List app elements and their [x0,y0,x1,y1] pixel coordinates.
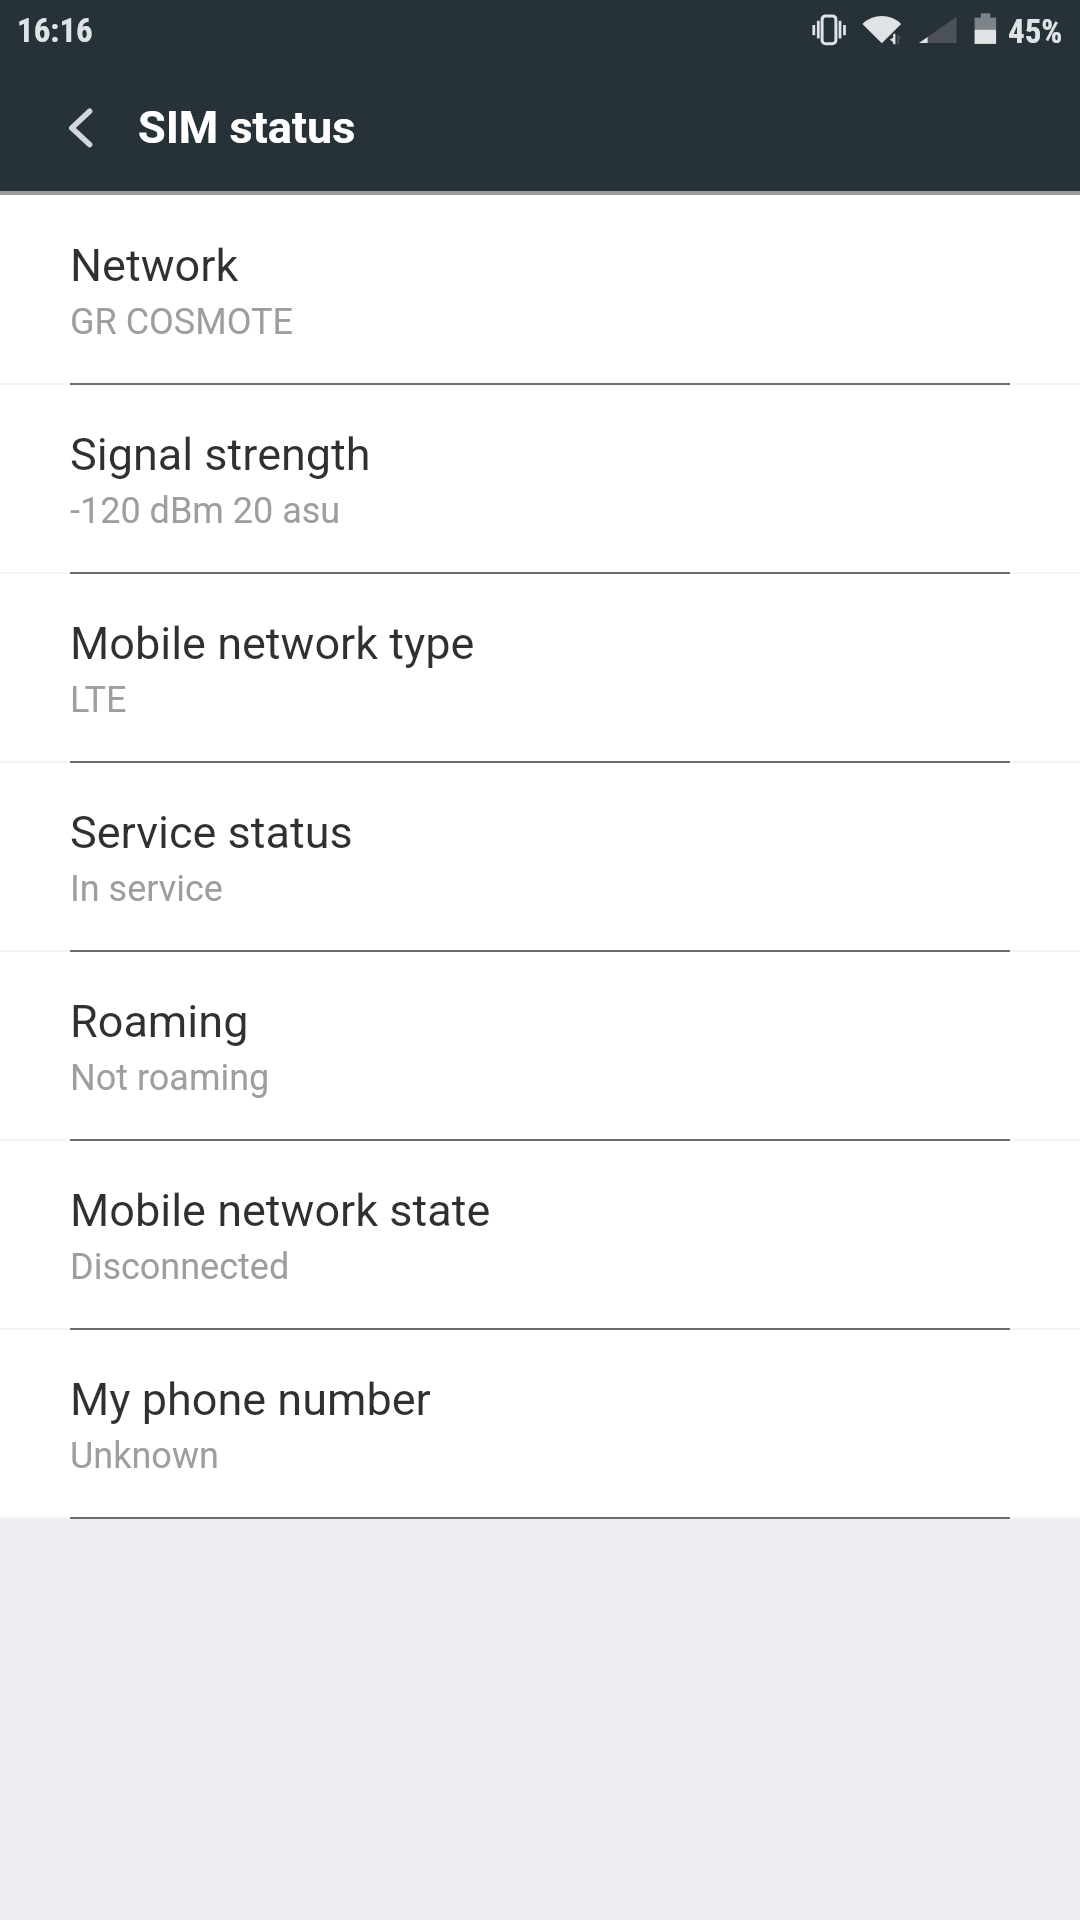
staticText: In service [70,868,223,910]
staticText: Signal strength [70,428,371,481]
button[interactable]: Service status [0,762,1080,951]
staticText: Unknown [70,1435,219,1477]
button[interactable]: Signal strength [0,384,1080,573]
staticText: SIM status [138,101,356,154]
button[interactable]: Mobile network state [0,1140,1080,1329]
staticText: Not roaming [70,1057,270,1099]
staticText: 16:16 [17,11,93,50]
staticText: Network [70,239,239,292]
staticText: -120 dBm 20 asu [70,490,341,532]
button[interactable]: My phone number [0,1329,1080,1518]
staticText: My phone number [70,1373,431,1426]
staticText: Mobile network type [70,617,475,670]
staticText: Roaming [70,995,249,1048]
staticText: 45% [1008,12,1063,51]
button[interactable]: Navigate up [0,58,130,191]
staticText: GR COSMOTE [70,301,293,343]
staticText: Service status [70,806,353,859]
staticText: LTE [70,679,127,721]
staticText: Disconnected [70,1246,290,1288]
staticText: Mobile network state [70,1184,491,1237]
button[interactable]: Roaming [0,951,1080,1140]
button[interactable]: Mobile network type [0,573,1080,762]
button[interactable]: Network [0,195,1080,384]
